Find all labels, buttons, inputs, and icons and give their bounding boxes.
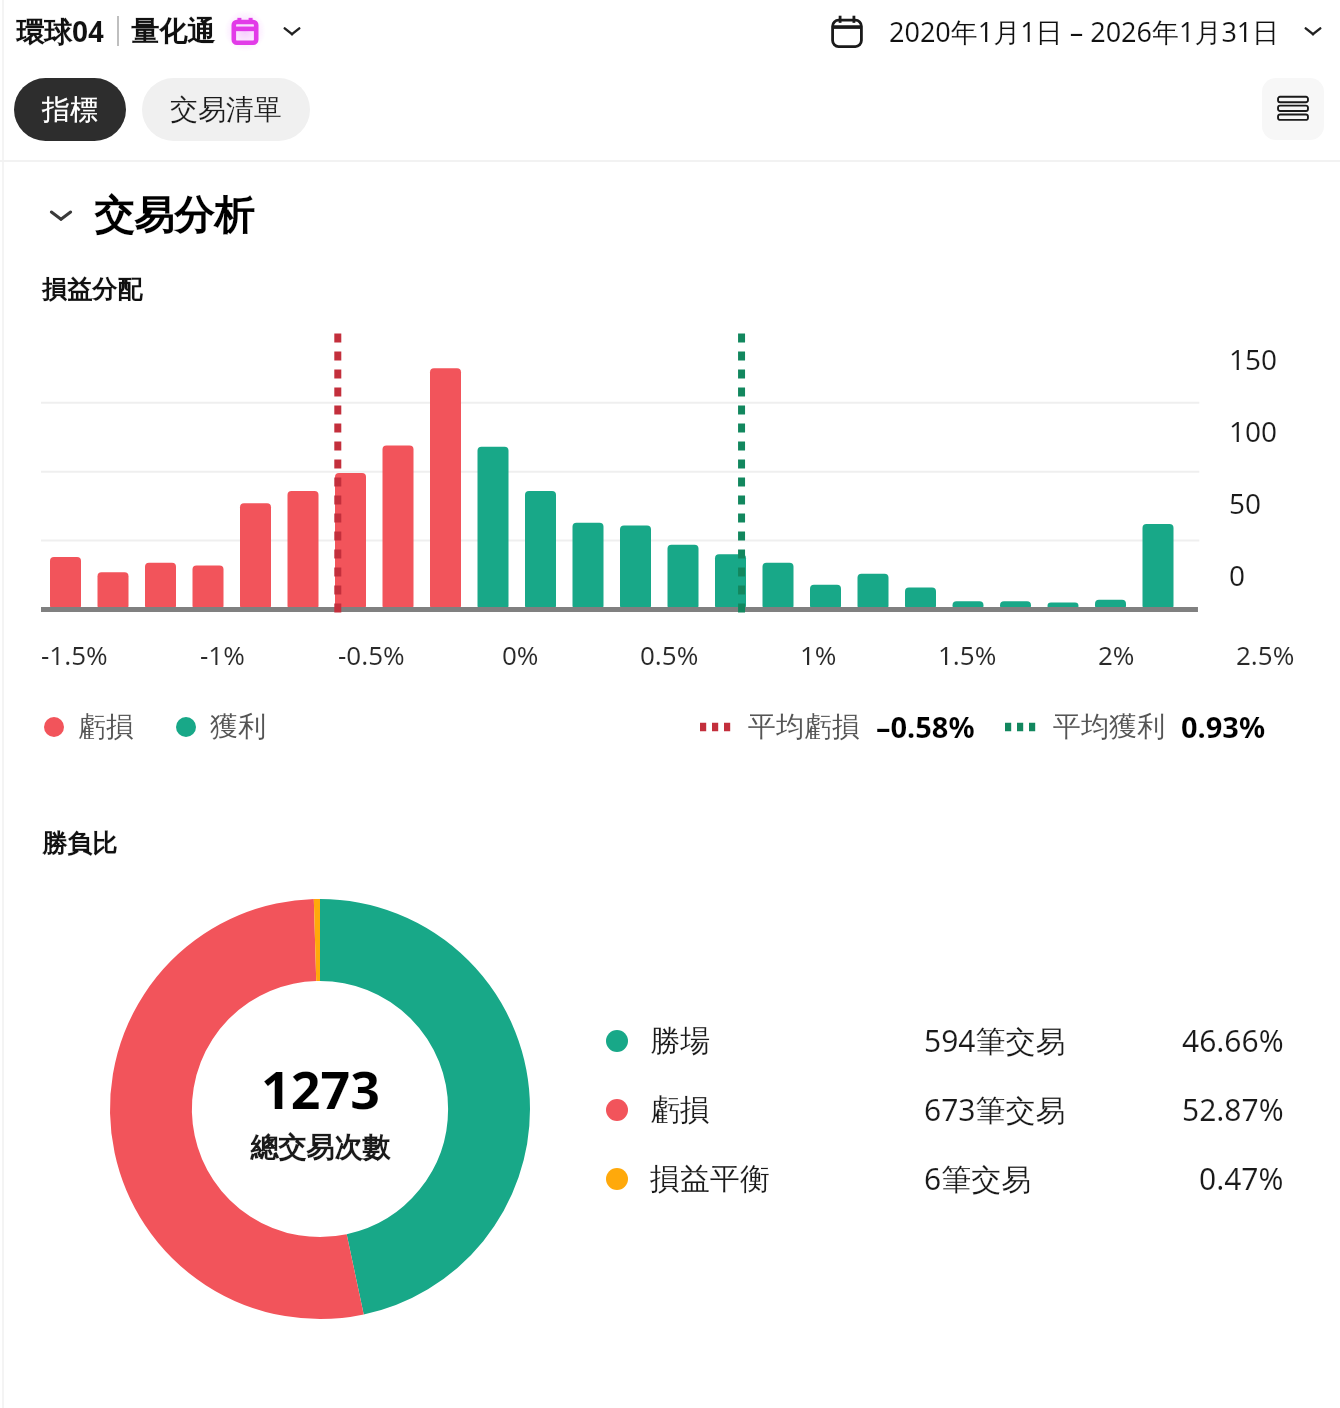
- staticText: 量化通: [131, 14, 215, 49]
- staticText: 虧損: [78, 709, 134, 744]
- staticText: 2%: [1098, 637, 1135, 672]
- button[interactable]: 交易分析: [46, 190, 1340, 240]
- button[interactable]: 交易清單: [142, 78, 310, 141]
- staticText: 勝場: [650, 1022, 710, 1060]
- button[interactable]: 虧損: [606, 1089, 1284, 1130]
- staticText: 2020年1月1日 – 2026年1月31日: [889, 13, 1280, 50]
- staticText: -1.5%: [41, 637, 108, 672]
- staticText: 2.5%: [1236, 637, 1295, 672]
- staticText: 環球04: [16, 12, 105, 50]
- staticText: 46.66%: [1182, 1020, 1284, 1061]
- staticText: 交易清單: [170, 92, 282, 127]
- staticText: 虧損: [650, 1091, 710, 1129]
- staticText: 總交易次數: [250, 1130, 390, 1165]
- staticText: –0.58%: [876, 707, 975, 746]
- staticText: 0.5%: [640, 637, 699, 672]
- button[interactable]: Date range: [827, 11, 1326, 51]
- staticText: 交易分析: [94, 190, 254, 240]
- staticText: 52.87%: [1182, 1089, 1284, 1130]
- other: Expand: [1300, 18, 1326, 44]
- staticText: 0: [1229, 556, 1246, 588]
- staticText: 1.5%: [938, 637, 997, 672]
- staticText: 1273: [261, 1053, 380, 1124]
- staticText: 0.47%: [1199, 1158, 1284, 1199]
- staticText: 594筆交易: [924, 1020, 1066, 1061]
- staticText: 0.93%: [1181, 707, 1266, 746]
- staticText: 指標: [42, 92, 98, 127]
- staticText: 1%: [800, 637, 837, 672]
- staticText: 50: [1229, 484, 1262, 516]
- staticText: -1%: [200, 637, 245, 672]
- staticText: 6筆交易: [924, 1158, 1032, 1199]
- staticText: 獲利: [210, 709, 266, 744]
- other: Expand: [279, 18, 305, 44]
- button[interactable]: Menu: [1262, 78, 1324, 140]
- button[interactable]: 指標: [14, 78, 126, 141]
- button[interactable]: 損益平衡: [606, 1158, 1284, 1199]
- staticText: 勝負比: [42, 828, 117, 859]
- other: Calendar: [225, 11, 265, 51]
- button[interactable]: 勝場: [606, 1020, 1284, 1061]
- button[interactable]: 環球04: [16, 11, 305, 51]
- staticText: 平均獲利: [1053, 709, 1165, 744]
- staticText: 平均虧損: [748, 709, 860, 744]
- other: Date range: [827, 11, 867, 51]
- staticText: -0.5%: [338, 637, 405, 672]
- staticText: 損益分配: [42, 274, 142, 305]
- staticText: 損益平衡: [650, 1160, 770, 1198]
- staticText: 0%: [502, 637, 539, 672]
- staticText: 100: [1229, 412, 1278, 444]
- staticText: 150: [1229, 340, 1278, 372]
- staticText: 673筆交易: [924, 1089, 1066, 1130]
